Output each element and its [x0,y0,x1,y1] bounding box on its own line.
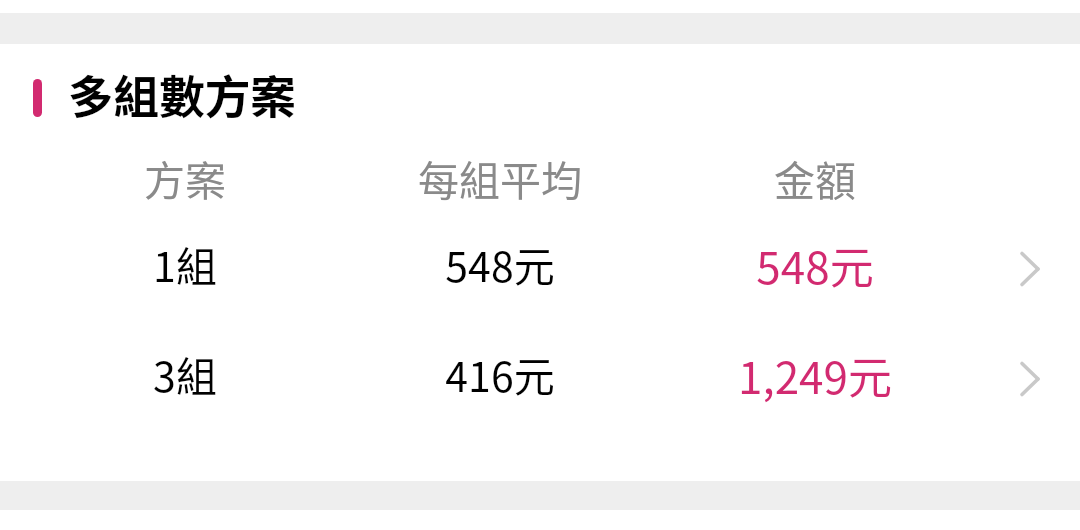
staticText: 1組 [0,234,385,293]
staticText: 548元 [615,233,1015,297]
staticText: 金額 [615,148,1015,207]
staticText: 每組平均 [300,148,700,207]
button[interactable]: 1組 548元 548元 [0,220,1080,330]
staticText: 方案 [0,148,385,207]
staticText: 多組數方案 [68,61,296,127]
other: 查看方案詳情 [1005,244,1055,294]
other: 查看方案詳情 [1005,354,1055,404]
staticText: 416元 [300,344,700,403]
staticText: 1,249元 [615,343,1015,407]
staticText: 548元 [300,234,700,293]
button[interactable]: 3組 416元 1,249元 [0,330,1080,440]
staticText: 3組 [0,344,385,403]
